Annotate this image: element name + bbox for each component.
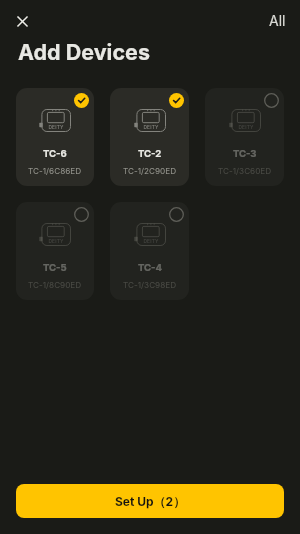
button[interactable]: DEITY	[205, 88, 284, 186]
staticText: Set Up（2）	[115, 494, 186, 509]
staticText: All	[269, 12, 286, 29]
button[interactable]: DEITY	[16, 202, 94, 300]
staticText: TC-3	[233, 148, 257, 160]
button[interactable]: Set Up（2）	[16, 484, 284, 518]
staticText: TC-2	[138, 148, 162, 160]
staticText: DEITY	[48, 124, 64, 130]
button[interactable]: DEITY	[110, 88, 189, 186]
staticText: DEITY	[143, 238, 159, 244]
button[interactable]: All	[266, 9, 289, 32]
staticText: TC-1/2C90ED	[123, 166, 177, 176]
staticText: DEITY	[48, 238, 64, 244]
staticText: TC-1/8C90ED	[28, 280, 82, 290]
staticText: TC-5	[43, 262, 67, 274]
staticText: TC-6	[43, 148, 67, 160]
button[interactable]: DEITY	[16, 88, 94, 186]
button[interactable]: DEITY	[110, 202, 189, 300]
staticText: DEITY	[238, 124, 254, 130]
staticText: Add Devices	[18, 39, 150, 65]
staticText: DEITY	[143, 124, 159, 130]
staticText: TC-1/6C86ED	[28, 166, 82, 176]
button[interactable]: Close	[8, 7, 37, 36]
staticText: TC-1/3C98ED	[123, 280, 177, 290]
staticText: TC-4	[138, 262, 162, 274]
staticText: TC-1/3C60ED	[218, 166, 272, 176]
